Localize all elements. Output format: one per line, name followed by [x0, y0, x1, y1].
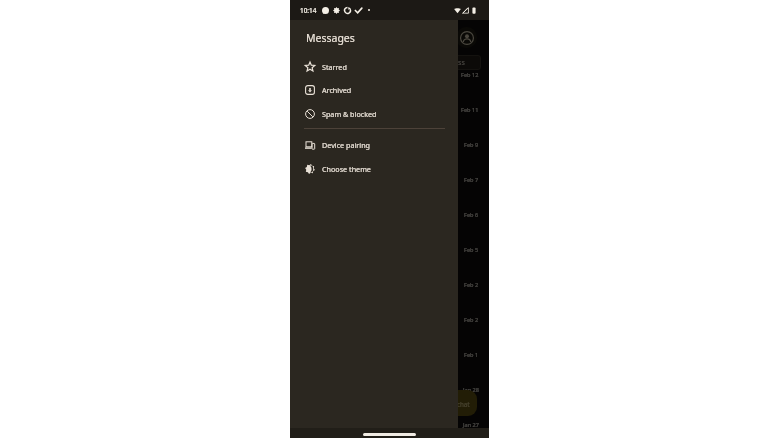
button[interactable]: Account	[456, 27, 477, 48]
staticText: Feb 5	[464, 246, 479, 254]
button[interactable]: Spam & blocked	[290, 102, 458, 125]
staticText: Feb 7	[464, 176, 479, 184]
staticText: Feb 9	[464, 141, 479, 149]
button[interactable]: Search conversations and business	[300, 55, 481, 70]
staticText: Choose theme	[322, 164, 371, 174]
staticText: 10:14	[300, 6, 317, 15]
staticText: Search conversations and business	[350, 58, 465, 68]
staticText: Contact name	[330, 106, 383, 117]
staticText: Device pairing	[322, 140, 371, 150]
staticText: Contact name	[330, 421, 383, 432]
staticText: Feb 2	[464, 316, 479, 324]
button[interactable]: Contact name	[290, 137, 489, 172]
staticText: Feb 6	[464, 211, 479, 219]
staticText: Starred	[322, 62, 347, 72]
staticText: Messages	[306, 31, 355, 45]
button[interactable]: Contact name	[290, 172, 489, 207]
staticText: Feb 12	[461, 71, 479, 79]
staticText: Start chat	[441, 400, 470, 408]
button[interactable]: Contact name	[290, 347, 489, 382]
staticText: Jan 27	[463, 421, 479, 429]
button[interactable]: Contact name	[290, 242, 489, 277]
button[interactable]: Device pairing	[290, 133, 458, 156]
button[interactable]: Contact name	[290, 312, 489, 347]
staticText: Contact name	[330, 141, 383, 152]
button[interactable]: Choose theme	[290, 157, 458, 180]
button[interactable]: Starred	[290, 55, 458, 78]
button[interactable]: Contact name	[290, 207, 489, 242]
staticText: Feb 11	[461, 106, 479, 114]
button[interactable]: Contact name	[290, 417, 489, 438]
button[interactable]: Contact name	[290, 102, 489, 137]
button[interactable]: Archived	[290, 78, 458, 101]
button[interactable]: Start chat	[422, 390, 477, 416]
staticText: Message preview text	[330, 433, 401, 438]
button[interactable]: Contact name	[290, 382, 489, 417]
staticText: Message preview text	[330, 83, 401, 93]
button[interactable]: Contact name	[290, 277, 489, 312]
staticText: Archived	[322, 85, 352, 95]
staticText: Feb 1	[464, 351, 479, 359]
button[interactable]: Contact name	[290, 67, 489, 102]
staticText: Jan 28	[463, 386, 479, 394]
staticText: Feb 2	[464, 281, 479, 289]
staticText: Spam & blocked	[322, 109, 377, 119]
